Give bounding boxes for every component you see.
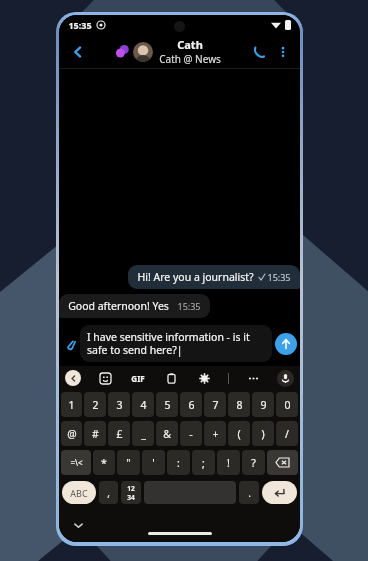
button[interactable]: @ bbox=[61, 421, 82, 446]
button[interactable]: + bbox=[204, 421, 226, 446]
button[interactable]: £ bbox=[108, 421, 130, 446]
button[interactable]: Expand toolbar bbox=[65, 370, 81, 386]
staticText: 3 bbox=[116, 398, 123, 412]
button[interactable]: 12 bbox=[121, 481, 141, 504]
button[interactable]: ' bbox=[142, 450, 165, 475]
staticText: 15:35 bbox=[267, 271, 291, 283]
button[interactable]: Back bbox=[65, 39, 91, 65]
button[interactable]: More bbox=[244, 369, 262, 387]
staticText: _ bbox=[141, 427, 146, 441]
staticText: 6 bbox=[188, 398, 195, 412]
staticText: 4 bbox=[140, 398, 147, 412]
staticText: 12 bbox=[127, 484, 135, 493]
staticText: =\< bbox=[70, 457, 83, 468]
button[interactable]: ! bbox=[217, 450, 240, 475]
staticText: 5 bbox=[164, 398, 171, 412]
staticText: ; bbox=[202, 456, 205, 470]
button[interactable]: Voice input bbox=[277, 370, 294, 387]
staticText: 8 bbox=[236, 398, 243, 412]
button[interactable]: ( bbox=[228, 421, 250, 446]
staticText: 1 bbox=[68, 398, 75, 412]
staticText: 0 bbox=[284, 398, 291, 412]
button[interactable]: I have sensitive information - is it saf… bbox=[80, 325, 272, 362]
staticText: Cath bbox=[177, 37, 203, 52]
button[interactable]: Attach bbox=[62, 336, 78, 352]
button[interactable]: 2 bbox=[84, 392, 106, 417]
staticText: . bbox=[248, 486, 251, 500]
staticText: : bbox=[177, 456, 180, 470]
button[interactable]: 3 bbox=[108, 392, 130, 417]
button[interactable]: Hi! Are you a journalist? bbox=[128, 265, 300, 289]
button[interactable]: ) bbox=[252, 421, 274, 446]
button[interactable]: =\< bbox=[61, 450, 91, 475]
staticText: 7 bbox=[212, 398, 219, 412]
staticText: I have sensitive information - is it saf… bbox=[87, 330, 265, 357]
staticText: £ bbox=[116, 427, 123, 441]
button[interactable]: / bbox=[276, 421, 298, 446]
staticText: ) bbox=[261, 427, 265, 441]
button[interactable]: ABC bbox=[62, 481, 96, 504]
staticText: ' bbox=[152, 456, 155, 470]
staticText: 2 bbox=[92, 398, 99, 412]
button[interactable]: ? bbox=[242, 450, 265, 475]
button[interactable]: 5 bbox=[156, 392, 178, 417]
staticText: 34 bbox=[127, 493, 135, 502]
staticText: Cath @ News bbox=[159, 52, 221, 66]
staticText: , bbox=[107, 486, 110, 500]
button[interactable]: Profile photo bbox=[133, 42, 153, 62]
button[interactable]: . bbox=[239, 481, 259, 504]
staticText: - bbox=[189, 427, 193, 441]
button[interactable]: GIF bbox=[129, 369, 147, 387]
button[interactable]: 7 bbox=[204, 392, 226, 417]
button[interactable]: 0 bbox=[276, 392, 298, 417]
button[interactable]: More options bbox=[272, 41, 294, 63]
button[interactable]: Hide keyboard bbox=[71, 518, 85, 532]
staticText: 15:35 bbox=[177, 300, 201, 312]
button[interactable]: Stickers bbox=[96, 369, 114, 387]
staticText: / bbox=[285, 427, 289, 441]
staticText: # bbox=[92, 427, 99, 441]
button[interactable]: , bbox=[99, 481, 118, 504]
button[interactable]: 8 bbox=[228, 392, 250, 417]
staticText: @ bbox=[67, 427, 77, 441]
button[interactable]: " bbox=[117, 450, 140, 475]
button[interactable]: Enter bbox=[262, 481, 297, 504]
staticText: * bbox=[101, 456, 107, 470]
button[interactable]: * bbox=[93, 450, 115, 475]
button[interactable]: ; bbox=[192, 450, 215, 475]
staticText: + bbox=[212, 427, 219, 441]
button[interactable]: 6 bbox=[180, 392, 202, 417]
staticText: ? bbox=[251, 456, 256, 470]
button[interactable]: & bbox=[156, 421, 178, 446]
button[interactable]: Clipboard bbox=[162, 369, 180, 387]
staticText: Hi! Are you a journalist? bbox=[137, 270, 254, 284]
button[interactable]: 1 bbox=[61, 392, 82, 417]
button[interactable]: Call bbox=[246, 39, 272, 65]
staticText: GIF bbox=[131, 373, 145, 384]
staticText: 15:35 bbox=[68, 19, 92, 31]
staticText: " bbox=[126, 456, 131, 470]
staticText: ABC bbox=[70, 487, 88, 499]
staticText: ! bbox=[227, 456, 230, 470]
button[interactable]: Good afternoon! Yes bbox=[59, 294, 210, 318]
staticText: Good afternoon! Yes bbox=[68, 299, 169, 313]
button[interactable]: Backspace bbox=[267, 450, 298, 475]
button[interactable]: Send bbox=[275, 333, 297, 355]
button[interactable]: # bbox=[84, 421, 106, 446]
button[interactable]: - bbox=[180, 421, 202, 446]
button[interactable]: 9 bbox=[252, 392, 274, 417]
button[interactable]: Settings bbox=[195, 369, 213, 387]
button[interactable]: _ bbox=[132, 421, 154, 446]
staticText: ( bbox=[237, 427, 241, 441]
staticText: & bbox=[163, 427, 171, 441]
button[interactable]: : bbox=[167, 450, 190, 475]
staticText: 9 bbox=[260, 398, 267, 412]
button[interactable]: 4 bbox=[132, 392, 154, 417]
